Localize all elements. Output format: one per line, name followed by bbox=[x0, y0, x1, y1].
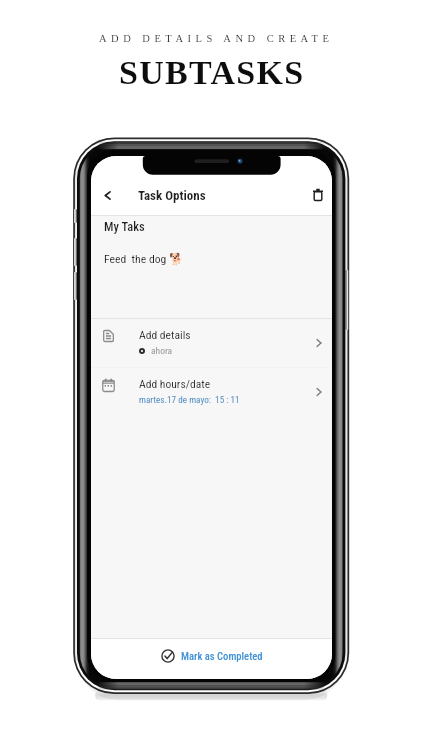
staticText: Mark as Completed bbox=[181, 650, 263, 662]
button[interactable]: Delete bbox=[304, 181, 332, 209]
staticText: My Taks bbox=[104, 219, 145, 234]
staticText: Task Options bbox=[138, 188, 206, 203]
button[interactable]: Mark as Completed bbox=[153, 646, 271, 672]
staticText: martes.17 de mayo: 15 : 11 bbox=[139, 394, 240, 405]
staticText: SUBTASKS bbox=[119, 54, 305, 92]
button[interactable]: Back bbox=[93, 181, 121, 209]
button[interactable]: Add details bbox=[91, 319, 332, 367]
staticText: ADD DETAILS AND CREATE bbox=[99, 33, 334, 45]
staticText: ahora bbox=[151, 345, 173, 356]
staticText: Feed the dog 🐕 bbox=[104, 252, 184, 266]
button[interactable]: Add hours/date bbox=[91, 368, 332, 416]
staticText: Add hours/date bbox=[139, 377, 211, 391]
staticText: Add details bbox=[139, 328, 191, 342]
